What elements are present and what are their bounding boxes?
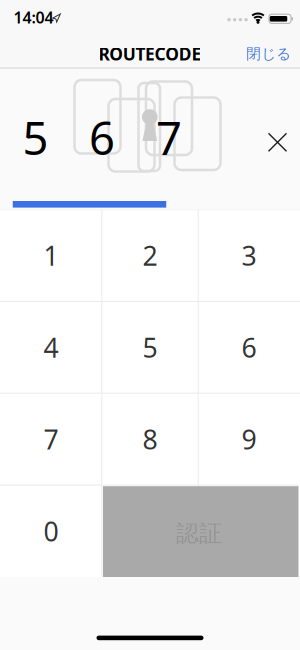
staticText: 6 [89, 107, 115, 167]
button[interactable]: 7 [1, 394, 101, 484]
staticText: 6 [242, 330, 257, 365]
staticText: ROUTECODE [99, 42, 201, 65]
button[interactable]: 8 [102, 394, 197, 484]
staticText: 4 [43, 330, 58, 365]
staticText: 14:04 [13, 7, 53, 28]
staticText: 7 [43, 421, 58, 457]
staticText: 認証 [176, 519, 222, 547]
button[interactable]: 3 [199, 210, 299, 300]
button[interactable]: 6 [199, 302, 299, 392]
staticText: 1 [43, 238, 58, 273]
staticText: 9 [242, 421, 257, 457]
button[interactable]: 9 [199, 394, 299, 484]
staticText: 5 [22, 107, 48, 167]
staticText: 3 [242, 238, 257, 273]
staticText: 0 [43, 513, 58, 549]
button[interactable]: 0 [1, 486, 101, 576]
staticText: 5 [142, 330, 157, 365]
staticText: 8 [142, 421, 157, 457]
staticText: 2 [142, 238, 157, 273]
button[interactable]: Delete [259, 124, 295, 160]
button[interactable]: 1 [1, 210, 101, 300]
button[interactable]: 4 [1, 302, 101, 392]
staticText: 7 [156, 107, 182, 167]
button[interactable]: 2 [102, 210, 197, 300]
staticText: 閉じる [246, 45, 291, 63]
button[interactable]: 5 [102, 302, 197, 392]
button[interactable]: 閉じる [234, 39, 300, 69]
